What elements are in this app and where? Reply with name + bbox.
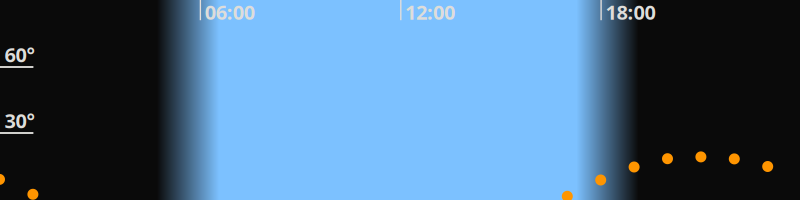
staticText: 06:00 bbox=[205, 0, 255, 25]
staticText: 12:00 bbox=[405, 0, 455, 25]
staticText: 18:00 bbox=[605, 0, 655, 25]
staticText: 30° bbox=[4, 107, 34, 134]
button[interactable]: Hourly temperature chart bbox=[0, 0, 800, 200]
staticText: 60° bbox=[4, 41, 34, 68]
